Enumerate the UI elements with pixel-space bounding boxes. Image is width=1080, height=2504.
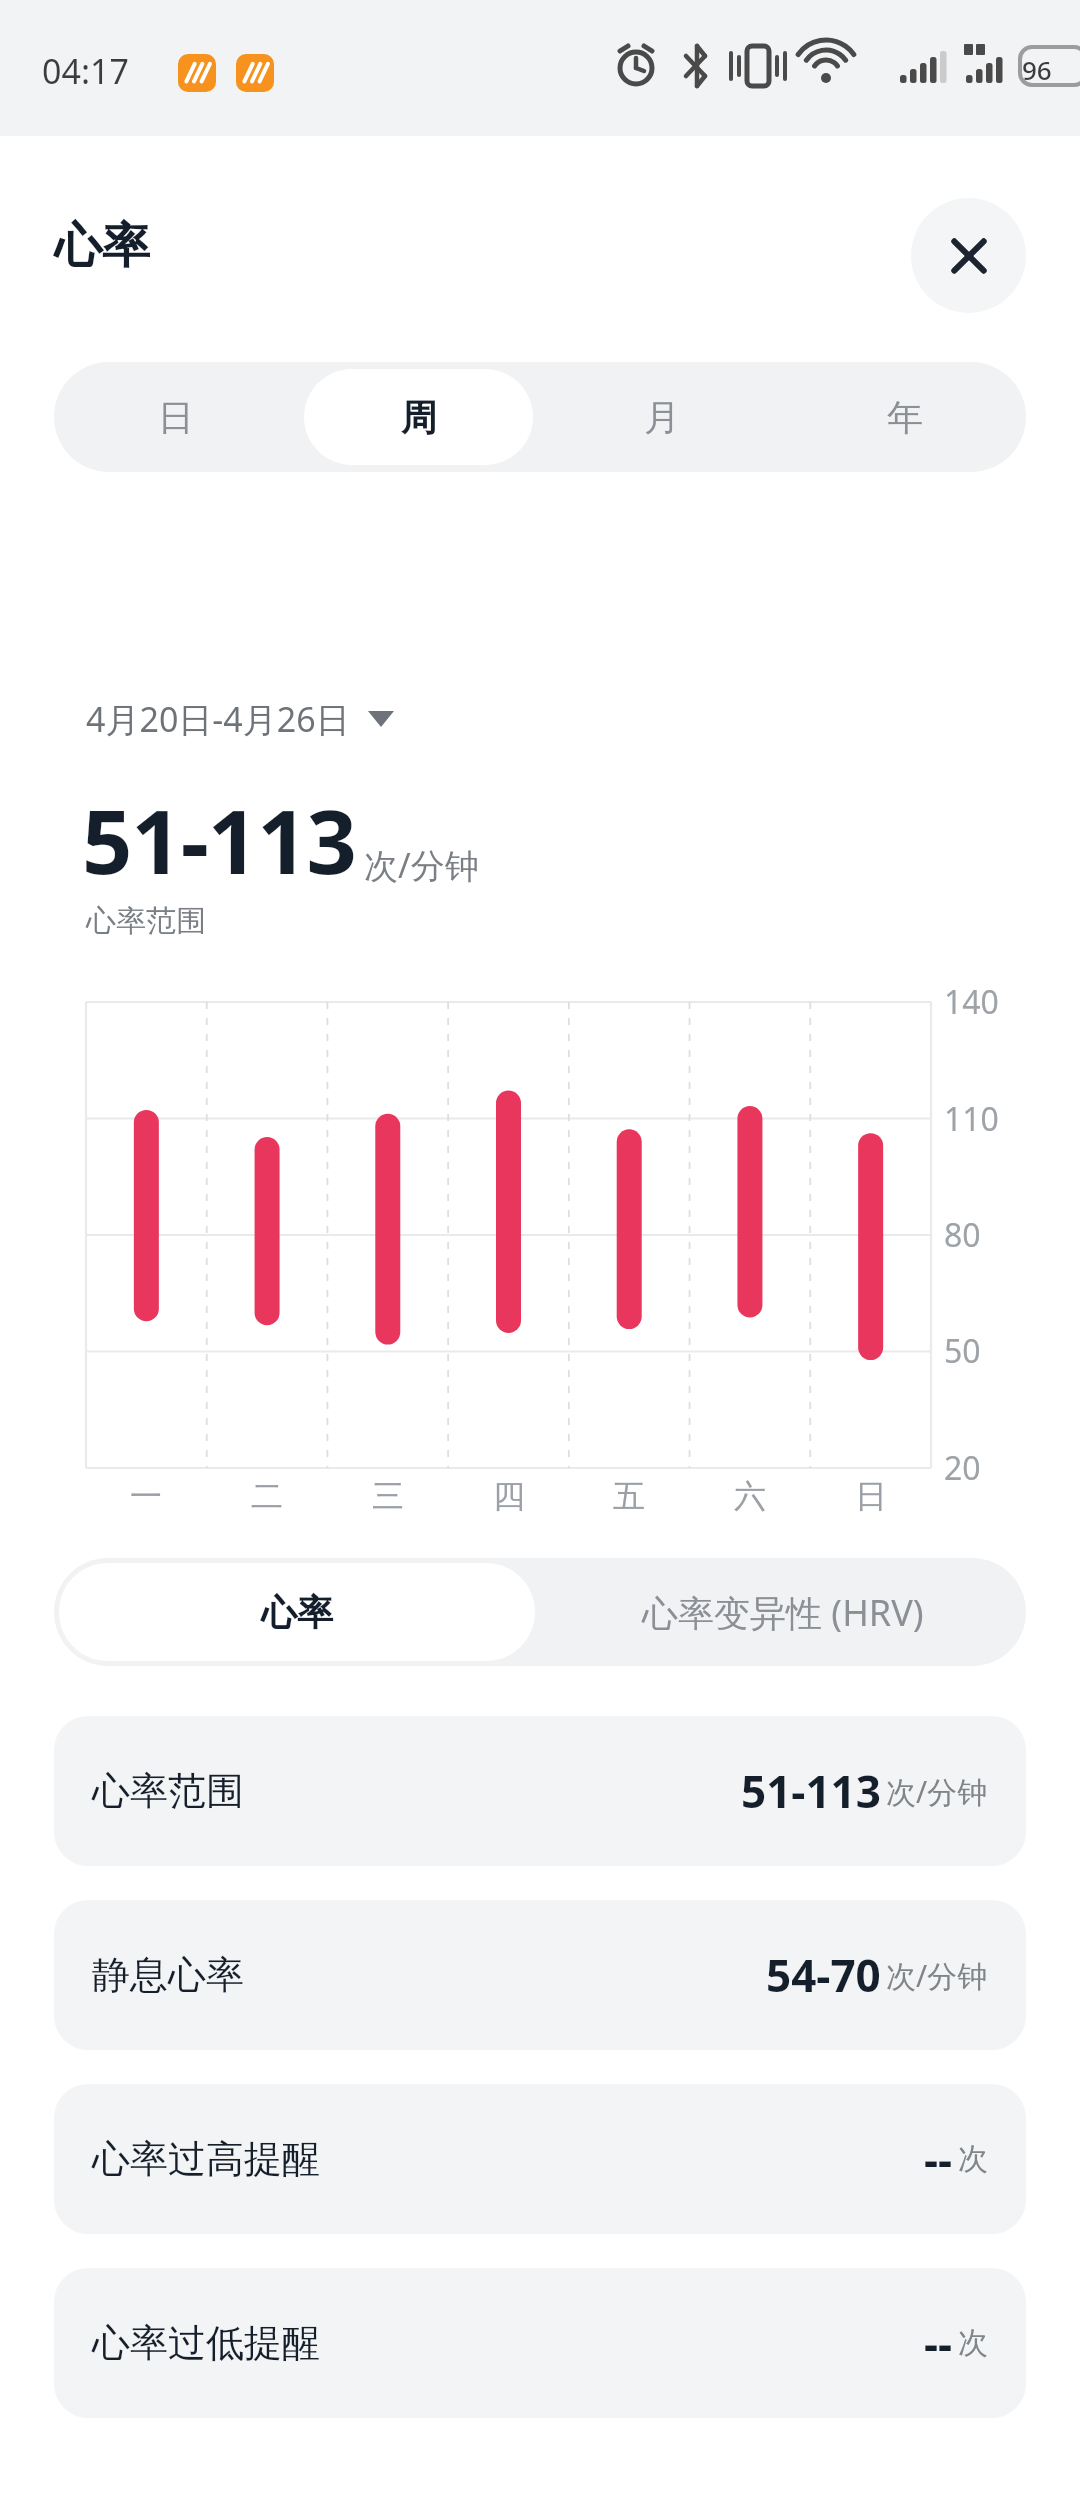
button[interactable]: 心率范围 xyxy=(54,1716,1026,1866)
staticText: -- xyxy=(924,2313,953,2373)
staticText: 心率变异性 (HRV) xyxy=(642,1588,924,1637)
button[interactable]: 心率过高提醒 xyxy=(54,2084,1026,2234)
staticText: 五 xyxy=(613,1476,645,1516)
staticText: 次/分钟 xyxy=(886,1955,988,1996)
button[interactable]: 心率过低提醒 xyxy=(54,2268,1026,2418)
staticText: 次/分钟 xyxy=(886,1771,988,1812)
staticText: 六 xyxy=(734,1476,766,1516)
staticText: 周 xyxy=(401,395,437,440)
staticText: 140 xyxy=(944,980,999,1024)
button[interactable]: 关闭 xyxy=(911,198,1026,313)
staticText: 51-113 xyxy=(741,1761,881,1821)
button[interactable]: 心率 xyxy=(59,1563,535,1661)
staticText: 二 xyxy=(251,1476,283,1516)
staticText: 4月20日-4月26日 xyxy=(86,696,350,742)
staticText: 日 xyxy=(158,395,194,440)
staticText: 次 xyxy=(958,2324,988,2362)
staticText: -- xyxy=(924,2129,953,2189)
button[interactable]: 心率变异性 (HRV) xyxy=(540,1558,1026,1666)
button[interactable]: 日 xyxy=(61,369,290,465)
staticText: 04:17 xyxy=(42,48,129,94)
staticText: 54-70 xyxy=(766,1945,881,2005)
button[interactable]: 周 xyxy=(304,369,533,465)
staticText: 年 xyxy=(887,395,923,440)
staticText: 心率范围 xyxy=(86,902,206,940)
staticText: 日 xyxy=(855,1476,887,1516)
staticText: 51-113 xyxy=(82,780,356,900)
staticText: 次 xyxy=(958,2140,988,2178)
button[interactable]: 4月20日-4月26日 xyxy=(86,696,394,742)
button[interactable]: 静息心率 xyxy=(54,1900,1026,2050)
staticText: 心率 xyxy=(54,216,150,276)
staticText: 三 xyxy=(372,1476,404,1516)
staticText: 心率范围 xyxy=(92,1767,244,1815)
staticText: 心率 xyxy=(261,1590,333,1635)
staticText: 50 xyxy=(944,1329,981,1373)
staticText: 110 xyxy=(944,1097,999,1141)
staticText: 心率过低提醒 xyxy=(92,2319,320,2367)
staticText: 四 xyxy=(493,1476,525,1516)
button[interactable]: 年 xyxy=(790,369,1019,465)
staticText: 次/分钟 xyxy=(364,842,479,888)
staticText: 96 xyxy=(1022,52,1052,87)
button[interactable]: 月 xyxy=(547,369,776,465)
staticText: 80 xyxy=(944,1213,981,1257)
staticText: 一 xyxy=(130,1476,162,1516)
staticText: 20 xyxy=(944,1446,981,1490)
staticText: 月 xyxy=(644,395,680,440)
staticText: 静息心率 xyxy=(92,1951,244,1999)
staticText: 心率过高提醒 xyxy=(92,2135,320,2183)
